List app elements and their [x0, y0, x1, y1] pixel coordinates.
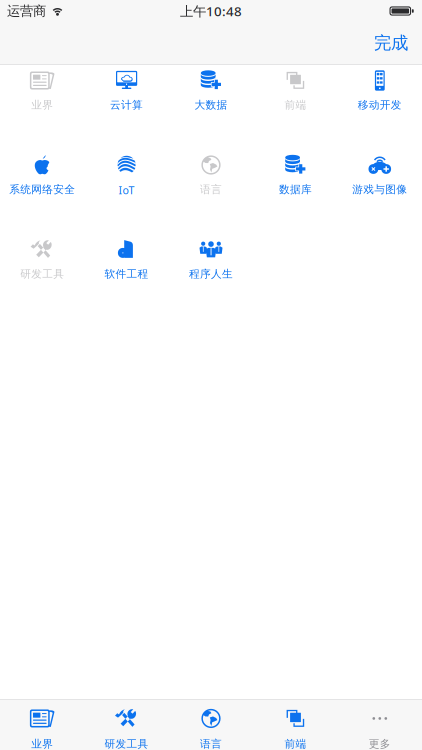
- button[interactable]: 业界: [0, 64, 84, 149]
- button[interactable]: 前端: [253, 64, 338, 149]
- button[interactable]: 研发工具: [84, 700, 169, 750]
- staticText: 前端: [284, 737, 306, 750]
- staticText: 上午10:48: [180, 2, 242, 20]
- staticText: 完成: [374, 32, 408, 54]
- staticText: 移动开发: [358, 98, 402, 112]
- staticText: 运营商: [7, 3, 46, 19]
- staticText: 更多: [369, 737, 391, 750]
- button[interactable]: 云计算: [84, 64, 169, 149]
- staticText: 云计算: [110, 98, 143, 112]
- button[interactable]: 系统网络安全: [0, 149, 84, 233]
- staticText: 前端: [284, 98, 306, 112]
- button[interactable]: 数据库: [253, 149, 338, 233]
- button[interactable]: 大数据: [169, 64, 253, 149]
- staticText: 系统网络安全: [9, 183, 75, 196]
- staticText: 大数据: [194, 98, 227, 112]
- staticText: IoT: [119, 183, 135, 197]
- staticText: 语言: [200, 737, 222, 750]
- staticText: 研发工具: [105, 737, 149, 750]
- staticText: 业界: [31, 737, 53, 750]
- staticText: 语言: [200, 183, 222, 196]
- staticText: 数据库: [279, 183, 312, 196]
- button[interactable]: 研发工具: [0, 233, 84, 318]
- staticText: 研发工具: [20, 267, 64, 281]
- button[interactable]: 语言: [169, 700, 253, 750]
- staticText: 游戏与图像: [352, 183, 407, 196]
- button[interactable]: 完成: [368, 26, 414, 60]
- button[interactable]: 业界: [0, 700, 84, 750]
- button[interactable]: IoT: [84, 149, 169, 233]
- staticText: 软件工程: [105, 267, 149, 281]
- button[interactable]: 软件工程: [84, 233, 169, 318]
- button[interactable]: 前端: [253, 700, 338, 750]
- button[interactable]: 更多: [338, 700, 422, 750]
- button[interactable]: 程序人生: [169, 233, 253, 318]
- button[interactable]: 移动开发: [338, 64, 422, 149]
- button[interactable]: 语言: [169, 149, 253, 233]
- button[interactable]: 游戏与图像: [338, 149, 422, 233]
- staticText: 程序人生: [189, 267, 233, 281]
- staticText: 业界: [31, 98, 53, 112]
